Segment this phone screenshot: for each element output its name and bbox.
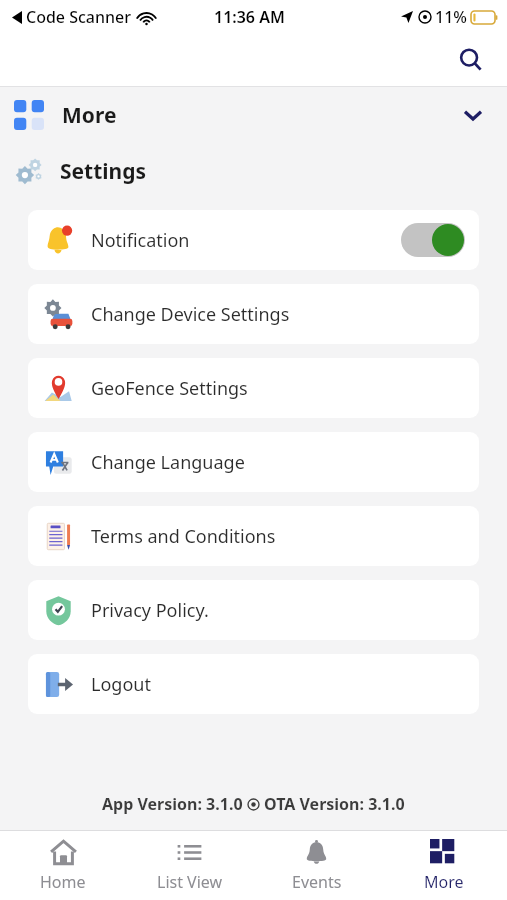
button[interactable]: Privacy Policy. — [28, 580, 479, 640]
staticText: Change Language — [91, 450, 245, 475]
button[interactable]: Events — [253, 831, 380, 900]
staticText: GeoFence Settings — [91, 376, 248, 401]
staticText: OTA Version: 3.1.0 — [264, 793, 405, 815]
button[interactable]: Notification toggle — [401, 223, 465, 257]
button[interactable]: List View — [126, 831, 253, 900]
button[interactable]: Change Device Settings — [28, 284, 479, 344]
staticText: Settings — [60, 157, 147, 186]
staticText: Code Scanner — [26, 6, 132, 28]
staticText: Events — [292, 871, 342, 893]
staticText: Logout — [91, 672, 151, 697]
staticText: List View — [157, 871, 223, 893]
staticText: Change Device Settings — [91, 302, 290, 327]
button[interactable]: More — [380, 831, 507, 900]
staticText: Notification — [91, 228, 190, 253]
staticText: App Version: 3.1.0 — [102, 793, 243, 815]
button[interactable]: Search — [449, 38, 493, 82]
staticText: Terms and Conditions — [91, 524, 276, 549]
staticText: 11% — [435, 6, 467, 28]
button[interactable]: Collapse — [451, 93, 495, 137]
button[interactable]: GeoFence Settings — [28, 358, 479, 418]
button[interactable]: Change Language — [28, 432, 479, 492]
button[interactable]: Terms and Conditions — [28, 506, 479, 566]
button[interactable]: Home — [0, 831, 126, 900]
staticText: Privacy Policy. — [91, 598, 209, 623]
button[interactable]: Notification — [28, 210, 479, 270]
staticText: More — [62, 101, 117, 130]
staticText: Home — [40, 871, 86, 893]
staticText: 11:36 AM — [214, 6, 285, 28]
staticText: More — [424, 871, 464, 893]
button[interactable]: More — [0, 87, 507, 143]
button[interactable]: Logout — [28, 654, 479, 714]
